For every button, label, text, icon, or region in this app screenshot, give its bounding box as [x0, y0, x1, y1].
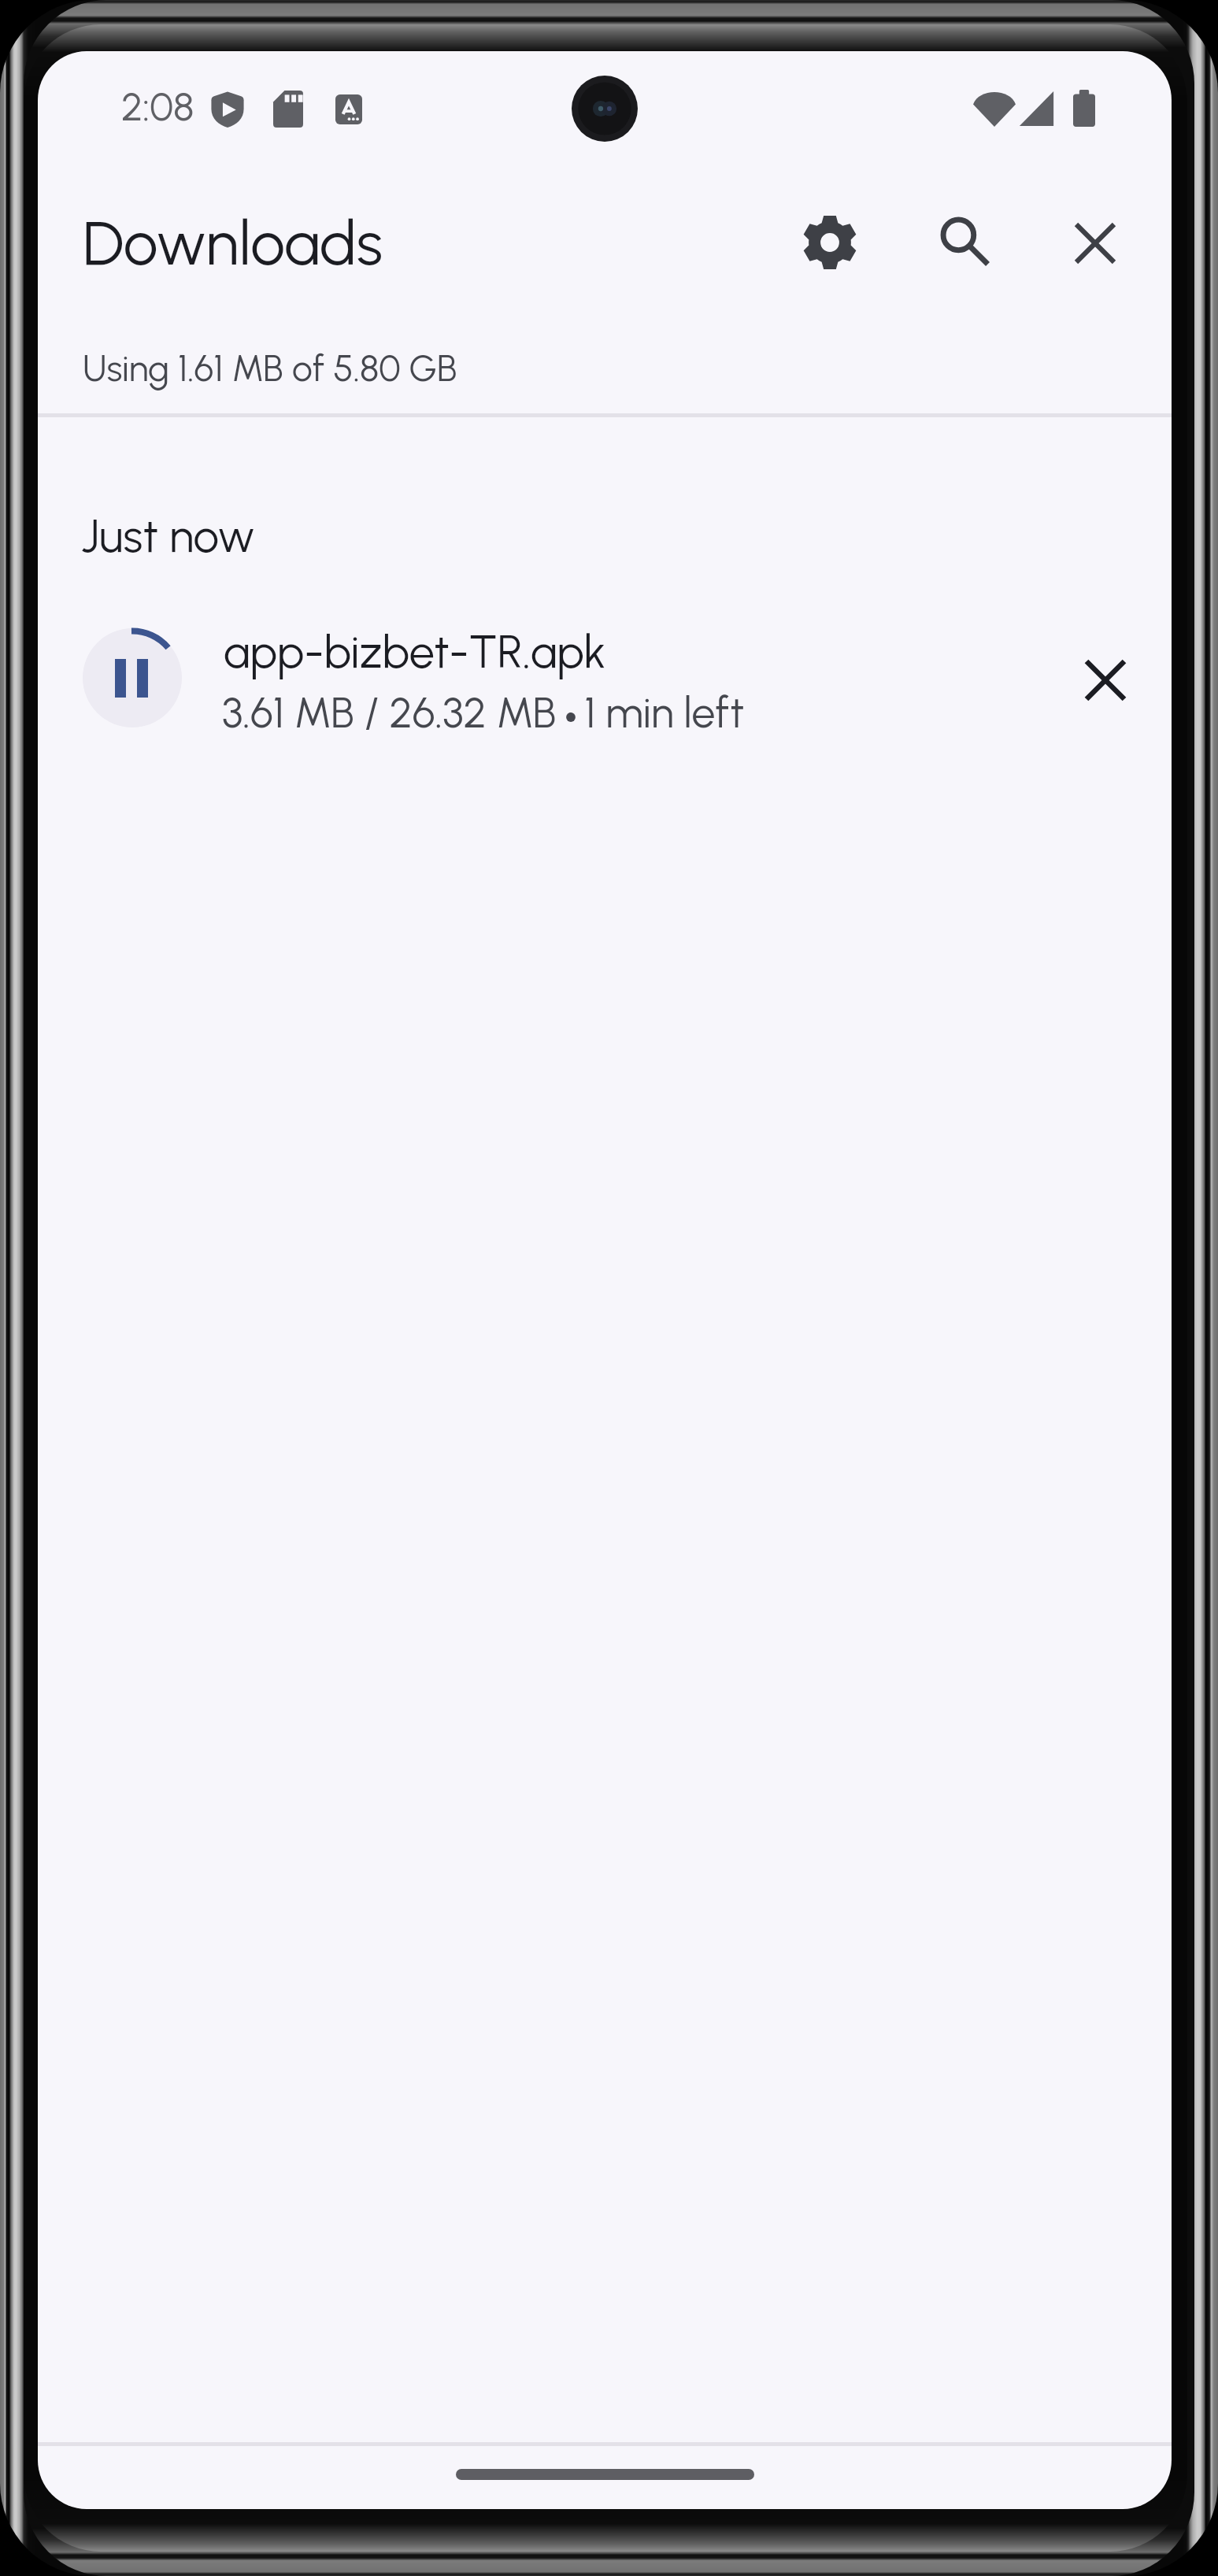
- button[interactable]: Close: [1044, 192, 1146, 294]
- staticText: 3.61 MB / 26.32 MB • 1 min left: [222, 687, 745, 738]
- staticText: Downloads: [83, 206, 383, 280]
- staticText: Just now: [81, 509, 255, 564]
- staticText: Using 1.61 MB of 5.80 GB: [83, 346, 457, 390]
- button[interactable]: Settings: [779, 191, 881, 294]
- button[interactable]: Home: [456, 2469, 754, 2480]
- staticText: app-bizbet-TR.apk: [224, 624, 606, 679]
- button[interactable]: Search: [915, 191, 1017, 294]
- button[interactable]: Cancel download: [1054, 629, 1157, 731]
- button[interactable]: app-bizbet-TR.apk: [38, 602, 1172, 760]
- staticText: 2:08: [121, 83, 194, 130]
